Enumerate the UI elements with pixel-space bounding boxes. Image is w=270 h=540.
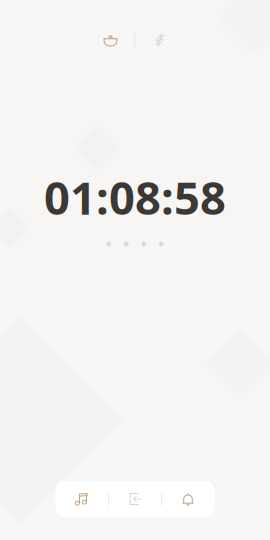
button[interactable]: Sound xyxy=(56,481,108,517)
button[interactable]: Exit xyxy=(109,481,161,517)
button[interactable]: Cook mode xyxy=(86,25,134,55)
button[interactable]: Keep screen on xyxy=(135,25,183,55)
button[interactable]: Alarm xyxy=(162,481,214,517)
staticText: 01:08:58 xyxy=(44,167,226,227)
